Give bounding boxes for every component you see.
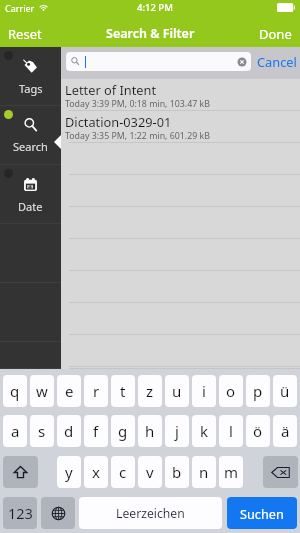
button[interactable]: Suchen <box>227 497 297 529</box>
button[interactable]: Search <box>0 106 61 165</box>
staticText: g <box>118 421 128 441</box>
button[interactable]: 123 <box>3 497 37 529</box>
button[interactable]: r <box>84 375 108 407</box>
button[interactable]: Reset <box>8 25 42 43</box>
staticText: Letter of Intent <box>65 81 157 98</box>
button[interactable]: Dictation-0329-01 <box>61 111 300 143</box>
staticText: ü <box>280 381 290 401</box>
staticText: Leerzeichen <box>116 505 185 522</box>
staticText: y <box>65 462 73 482</box>
button[interactable]: f <box>84 415 108 447</box>
button[interactable]: Clear text <box>66 52 251 71</box>
button[interactable]: ö <box>246 415 270 447</box>
button[interactable]: m <box>219 456 243 488</box>
staticText: Date <box>18 199 43 214</box>
button[interactable]: Backspace <box>263 456 298 488</box>
staticText: e <box>65 381 74 401</box>
staticText: b <box>172 462 182 482</box>
staticText: w <box>36 381 48 401</box>
button[interactable]: Shift <box>3 456 38 488</box>
button[interactable]: x <box>84 456 108 488</box>
staticText: a <box>11 421 20 441</box>
button[interactable]: Date <box>0 165 61 224</box>
staticText: v <box>146 462 154 482</box>
button[interactable]: Letter of Intent <box>61 79 300 111</box>
button[interactable]: z <box>138 375 162 407</box>
button[interactable]: Cancel <box>257 53 297 70</box>
staticText: Search & Filter <box>106 25 195 42</box>
button[interactable]: Done <box>259 25 292 43</box>
button[interactable]: u <box>165 375 189 407</box>
other: Clear text <box>237 57 247 67</box>
staticText: 123 <box>8 503 33 523</box>
staticText: t <box>120 381 126 401</box>
staticText: f <box>93 421 99 441</box>
staticText: Suchen <box>240 505 284 522</box>
button[interactable]: c <box>111 456 135 488</box>
staticText: n <box>199 462 209 482</box>
staticText: h <box>145 421 155 441</box>
staticText: p <box>253 381 263 401</box>
staticText: l <box>229 421 233 441</box>
staticText: q <box>10 381 20 401</box>
staticText: i <box>202 381 206 401</box>
staticText: c <box>119 462 127 482</box>
staticText: Reset <box>8 25 42 43</box>
staticText: d <box>64 421 74 441</box>
button[interactable]: l <box>219 415 243 447</box>
staticText: z <box>146 381 154 401</box>
button[interactable]: g <box>111 415 135 447</box>
button[interactable]: b <box>165 456 189 488</box>
button[interactable]: Leerzeichen <box>79 497 222 529</box>
button[interactable]: d <box>57 415 81 447</box>
button[interactable]: t <box>111 375 135 407</box>
staticText: m <box>224 462 239 482</box>
staticText: o <box>226 381 236 401</box>
button[interactable]: Change keyboard language <box>41 497 75 529</box>
button[interactable]: q <box>3 375 27 407</box>
button[interactable]: w <box>30 375 54 407</box>
staticText: Dictation-0329-01 <box>65 113 172 130</box>
button[interactable]: i <box>192 375 216 407</box>
staticText: Search <box>13 139 48 154</box>
button[interactable]: n <box>192 456 216 488</box>
button[interactable]: y <box>57 456 81 488</box>
button[interactable]: p <box>246 375 270 407</box>
staticText: Today 3:39 PM, 0:18 min, 103.47 kB <box>65 98 210 110</box>
staticText: Carrier <box>5 2 35 14</box>
staticText: k <box>200 421 209 441</box>
button[interactable]: ä <box>273 415 297 447</box>
button[interactable]: j <box>165 415 189 447</box>
button[interactable]: e <box>57 375 81 407</box>
button[interactable]: k <box>192 415 216 447</box>
button[interactable]: s <box>30 415 54 447</box>
staticText: Cancel <box>257 53 297 70</box>
staticText: Today 3:35 PM, 1:22 min, 601.29 kB <box>65 130 210 142</box>
staticText: j <box>175 421 179 441</box>
staticText: r <box>93 381 100 401</box>
staticText: 4:12 PM <box>137 1 173 14</box>
staticText: Tags <box>19 81 43 96</box>
staticText: u <box>172 381 182 401</box>
button[interactable]: a <box>3 415 27 447</box>
staticText: s <box>38 421 46 441</box>
button[interactable]: h <box>138 415 162 447</box>
button[interactable]: ü <box>273 375 297 407</box>
staticText: x <box>92 462 100 482</box>
staticText: ö <box>253 421 263 441</box>
staticText: Done <box>259 25 292 43</box>
staticText: ä <box>281 421 290 441</box>
button[interactable]: o <box>219 375 243 407</box>
button[interactable]: Tags <box>0 47 61 106</box>
button[interactable]: v <box>138 456 162 488</box>
